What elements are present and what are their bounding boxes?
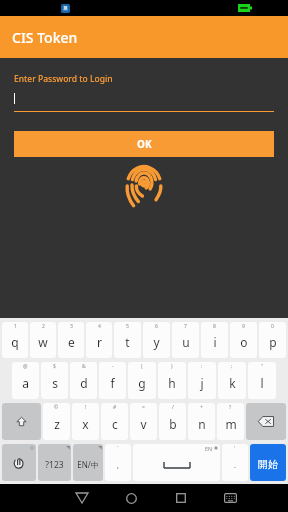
staticText: c [112,416,118,432]
button[interactable] [14,91,274,112]
staticText: g [138,375,146,391]
staticText: x [82,416,89,432]
staticText: CIS Token [12,28,78,47]
staticText: 1 [14,323,17,330]
staticText: o [240,334,248,350]
button[interactable]: EN/中 [73,444,103,481]
staticText: p [269,334,277,350]
staticText: t [125,334,130,350]
staticText: = [142,404,145,411]
staticText: 6 [155,323,158,330]
staticText: 9 [242,323,245,330]
button[interactable]: Space [133,444,220,481]
staticText: r [97,334,102,350]
staticText: f [110,375,115,391]
button[interactable]: = [130,403,157,440]
button[interactable]: $ [41,362,68,399]
staticText: © [54,404,59,411]
button[interactable]: 開始 [250,444,286,481]
button[interactable]: 0 [259,322,286,358]
button[interactable]: OK [14,131,274,157]
button[interactable]: Shift [2,403,41,440]
staticText: " [261,363,264,370]
button[interactable]: 9 [230,322,257,358]
staticText: y [153,334,160,350]
button[interactable]: ! [72,403,99,440]
staticText: u [182,334,190,350]
button[interactable]: Home [114,484,148,512]
staticText: ` [117,445,119,452]
staticText: @ [23,363,28,370]
button[interactable]: ` [105,444,131,481]
button[interactable]: @ [12,362,39,399]
staticText: + [200,404,203,411]
button[interactable]: 5 [114,322,141,358]
button[interactable]: Fingerprint login [124,162,164,208]
button[interactable]: / [159,403,186,440]
staticText: 5 [126,323,129,330]
staticText: m [225,416,237,432]
button[interactable]: Hide keyboard [213,484,247,512]
staticText: # [113,404,117,411]
staticText: , [117,461,119,471]
button[interactable]: ( [128,362,156,399]
button[interactable]: 7 [172,322,199,358]
staticText: EN/中 [77,459,99,470]
staticText: ? [229,404,232,411]
button[interactable]: & [70,362,97,399]
staticText: ' [234,445,236,452]
staticText: n [198,416,206,432]
staticText: q [11,334,19,350]
staticText: l [260,375,264,391]
button[interactable]: 8 [201,322,228,358]
staticText: ; [231,363,233,370]
button[interactable]: ) [158,362,186,399]
button[interactable]: ' [222,444,248,481]
button[interactable]: 6 [143,322,170,358]
staticText: v [140,416,147,432]
button[interactable]: 2 [30,322,56,358]
staticText: 0 [271,323,274,330]
staticText: - [112,363,114,370]
staticText: 4 [98,323,101,330]
staticText: ) [171,363,173,370]
staticText: 3 [70,323,73,330]
button[interactable]: + [188,403,215,440]
staticText: k [229,375,236,391]
staticText: ( [141,363,143,370]
button[interactable]: ? [217,403,244,440]
staticText: & [82,363,86,370]
button[interactable]: Back [65,484,99,512]
button[interactable]: Recent apps [164,484,198,512]
staticText: EN [205,445,213,452]
staticText: ! [85,404,87,411]
staticText: $ [53,363,56,370]
staticText: e [68,334,75,350]
staticText: . [234,461,236,471]
staticText: s [52,375,58,391]
staticText: h [168,375,176,391]
staticText: j [200,375,204,391]
staticText: 2 [42,323,45,330]
button[interactable]: - [99,362,126,399]
staticText: / [172,404,174,411]
button[interactable]: © [43,403,70,440]
staticText: ?123 [45,459,64,471]
staticText: 7 [184,323,187,330]
button[interactable]: 1 [2,322,28,358]
button[interactable]: 4 [86,322,112,358]
staticText: a [22,375,29,391]
button[interactable]: Handwriting input [2,444,36,481]
staticText: Enter Password to Login [14,73,113,85]
staticText: OK [137,137,152,151]
button[interactable]: : [188,362,216,399]
button[interactable]: ; [218,362,246,399]
button[interactable]: # [101,403,128,440]
staticText: w [38,334,48,350]
button[interactable]: ?123 [38,444,71,481]
staticText: : [201,363,203,370]
button[interactable]: " [248,362,276,399]
button[interactable]: 3 [58,322,84,358]
staticText: b [169,416,177,432]
button[interactable]: Backspace [246,403,286,440]
